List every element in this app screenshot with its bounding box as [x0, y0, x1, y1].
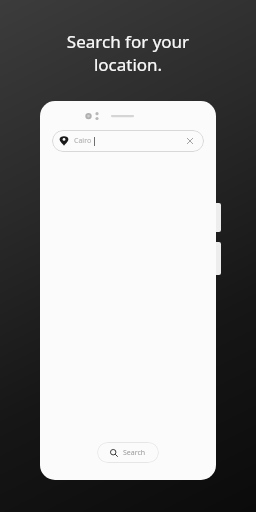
button[interactable]: Search [97, 442, 159, 463]
staticText: Cairo [74, 136, 92, 146]
staticText: Search [123, 448, 146, 458]
button[interactable]: Cairo [52, 130, 204, 152]
staticText: Search for your location. [0, 30, 256, 76]
button[interactable]: Clear search [183, 134, 197, 148]
